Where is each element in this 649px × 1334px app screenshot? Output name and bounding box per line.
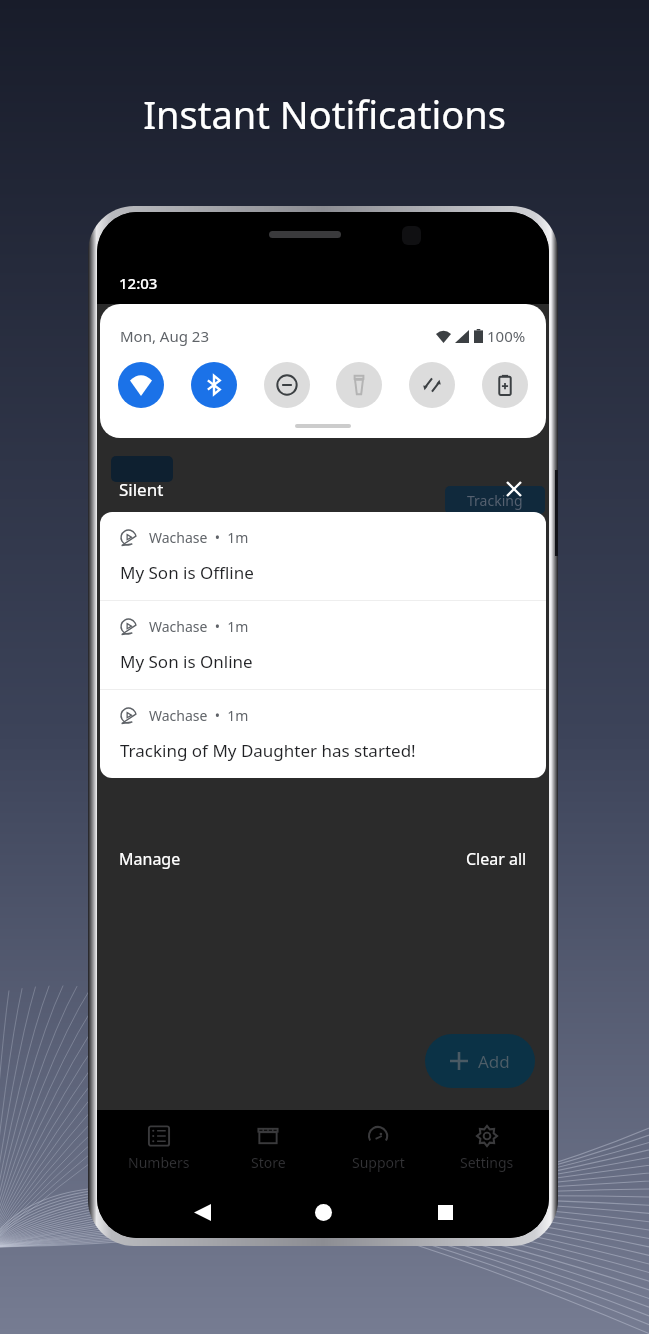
button[interactable]: Store [220, 1120, 316, 1176]
staticText: Tracking of My Daughter has started! [120, 739, 416, 762]
button[interactable]: Close notifications [501, 476, 527, 502]
button[interactable]: Bluetooth [191, 362, 237, 408]
button[interactable]: Manage [119, 844, 181, 874]
staticText: Tracking [467, 491, 523, 510]
staticText: Wachase • 1m [149, 706, 249, 725]
staticText: Instant Notifications [143, 88, 506, 140]
staticText: Settings [460, 1153, 514, 1172]
staticText: 12:03 [119, 273, 158, 293]
staticText: Store [251, 1153, 286, 1172]
button[interactable]: Wi-Fi [118, 362, 164, 408]
staticText: Silent [119, 478, 164, 501]
staticText: Numbers [128, 1153, 190, 1172]
staticText: Manage [119, 848, 181, 870]
button[interactable]: Auto-rotate [409, 362, 455, 408]
staticText: Add [478, 1050, 510, 1073]
button[interactable]: Clear all [466, 844, 527, 874]
button[interactable]: Wachase • 1m [100, 512, 546, 601]
button[interactable]: Home [306, 1195, 340, 1229]
button[interactable]: Wachase • 1m [100, 690, 546, 778]
staticText: Support [352, 1153, 405, 1172]
button[interactable]: Wachase • 1m [100, 601, 546, 690]
button[interactable]: Recents [428, 1195, 462, 1229]
staticText: Wachase • 1m [149, 528, 249, 547]
button[interactable]: Settings [439, 1120, 535, 1176]
button[interactable]: Do not disturb [264, 362, 310, 408]
staticText: My Son is Online [120, 650, 253, 673]
staticText: Mon, Aug 23 [120, 326, 210, 346]
button[interactable]: Back [185, 1195, 219, 1229]
button[interactable]: Numbers [111, 1120, 207, 1176]
button[interactable]: Battery saver [482, 362, 528, 408]
button[interactable]: Support [330, 1120, 426, 1176]
staticText: Clear all [466, 848, 527, 870]
staticText: Wachase • 1m [149, 617, 249, 636]
button[interactable]: Flashlight [336, 362, 382, 408]
button[interactable]: Add [425, 1034, 535, 1088]
staticText: 100% [487, 326, 526, 346]
staticText: My Son is Offline [120, 561, 254, 584]
